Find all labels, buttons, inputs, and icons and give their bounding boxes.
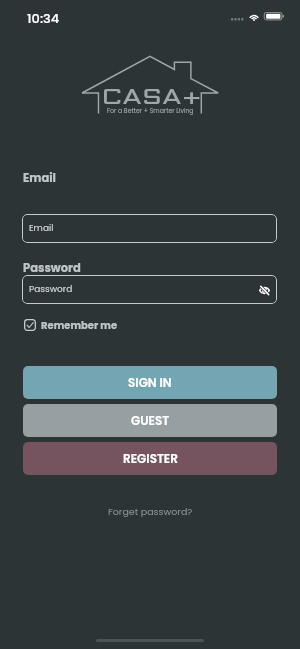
staticText: REGISTER bbox=[123, 450, 178, 467]
button[interactable]: Email bbox=[22, 214, 277, 243]
staticText: Email bbox=[23, 170, 56, 186]
staticText: Password bbox=[23, 260, 81, 276]
button[interactable]: REGISTER bbox=[23, 442, 277, 475]
button[interactable]: Forget password? bbox=[102, 502, 199, 521]
button[interactable]: Show password bbox=[255, 282, 273, 298]
staticText: Forget password? bbox=[108, 505, 193, 518]
staticText: SIGN IN bbox=[128, 374, 172, 391]
button[interactable]: GUEST bbox=[23, 404, 277, 437]
staticText: GUEST bbox=[131, 412, 170, 429]
staticText: 10:34 bbox=[27, 9, 60, 27]
staticText: For a Better + Smarter Living bbox=[107, 106, 194, 115]
button[interactable]: Password bbox=[22, 275, 277, 304]
button[interactable]: SIGN IN bbox=[23, 366, 277, 399]
button[interactable]: Remember me bbox=[24, 316, 118, 334]
staticText: Password bbox=[29, 283, 73, 296]
staticText: Email bbox=[29, 222, 54, 235]
staticText: Remember me bbox=[41, 318, 118, 332]
staticText: CASA+ bbox=[102, 90, 202, 109]
